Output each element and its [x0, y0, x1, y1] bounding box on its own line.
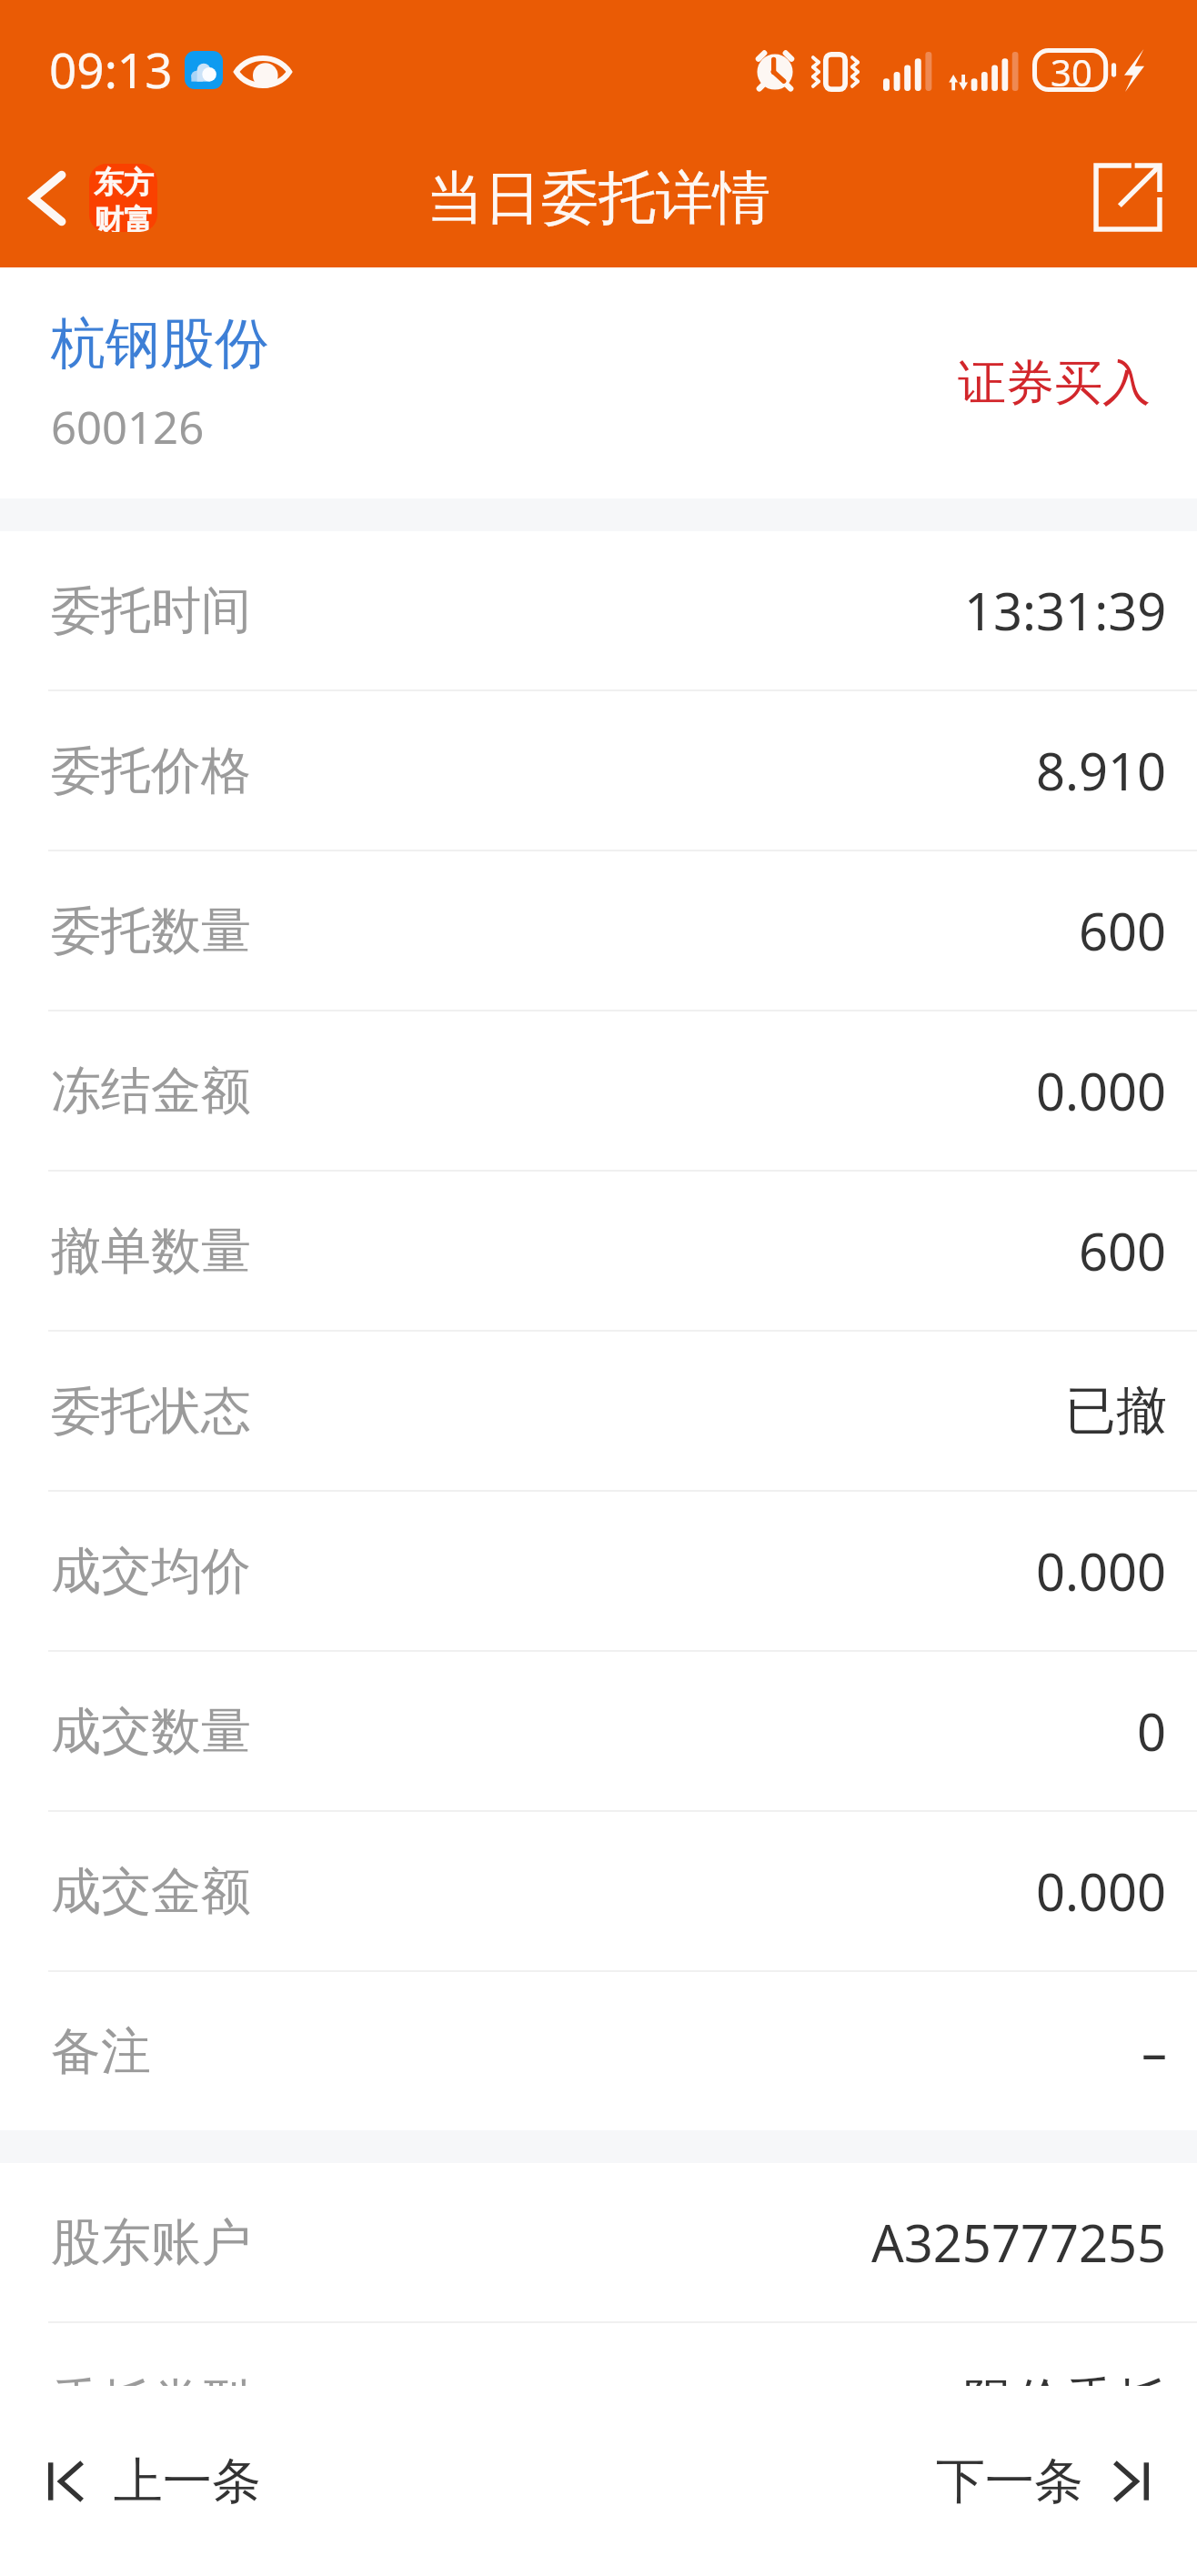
staticText: A325777255	[871, 2208, 1167, 2277]
staticText: 当日委托详情	[427, 162, 770, 234]
staticText: 限价委托	[963, 2370, 1167, 2435]
staticText: 600126	[51, 397, 205, 458]
staticText: 财富	[94, 202, 154, 232]
staticText: 0.000	[1036, 1536, 1167, 1605]
button[interactable]: 委托数量	[0, 851, 1197, 1010]
button[interactable]: 委托类型	[0, 2323, 1197, 2481]
staticText: 冻结金额	[51, 1060, 251, 1122]
button[interactable]: 撤单数量	[0, 1172, 1197, 1330]
staticText: 13:31:39	[964, 576, 1167, 645]
button[interactable]: 备注	[0, 1972, 1197, 2130]
staticText: 杭钢股份	[51, 309, 269, 378]
staticText: 撤单数量	[51, 1220, 251, 1283]
staticText: 600	[1079, 1216, 1167, 1285]
staticText: 委托时间	[51, 579, 251, 642]
button[interactable]: Share	[1053, 136, 1197, 259]
staticText: 股东账户	[51, 2211, 251, 2274]
staticText: 600	[1079, 896, 1167, 965]
staticText: 0.000	[1036, 1056, 1167, 1125]
staticText: 0	[1137, 1696, 1167, 1766]
staticText: 成交金额	[51, 1860, 251, 1923]
staticText: 下一条	[936, 2450, 1083, 2512]
button[interactable]: 委托状态	[0, 1332, 1197, 1490]
button[interactable]: 成交均价	[0, 1492, 1197, 1650]
staticText: –	[1142, 2017, 1167, 2086]
staticText: 0.000	[1036, 1857, 1167, 1926]
staticText: 30	[1051, 47, 1092, 91]
staticText: 委托状态	[51, 1380, 251, 1443]
button[interactable]: 上一条	[0, 2427, 297, 2536]
button[interactable]: Back	[0, 146, 181, 250]
button[interactable]: 下一条	[900, 2427, 1197, 2536]
staticText: 委托类型	[51, 2371, 251, 2434]
button[interactable]: 冻结金额	[0, 1011, 1197, 1170]
staticText: 委托数量	[51, 900, 251, 962]
staticText: 8.910	[1036, 736, 1167, 805]
staticText: 委托价格	[51, 740, 251, 802]
button[interactable]: 成交金额	[0, 1812, 1197, 1970]
staticText: 成交数量	[51, 1700, 251, 1763]
staticText: 证券买入	[958, 353, 1151, 414]
button[interactable]: 委托价格	[0, 691, 1197, 850]
staticText: 东方	[94, 164, 154, 202]
staticText: 09:13	[49, 36, 173, 102]
button[interactable]: 股东账户	[0, 2163, 1197, 2321]
staticText: 成交均价	[51, 1540, 251, 1603]
staticText: 上一条	[114, 2450, 261, 2512]
button[interactable]: 成交数量	[0, 1652, 1197, 1810]
button[interactable]: 委托时间	[0, 531, 1197, 689]
staticText: 已撤	[1065, 1379, 1167, 1444]
staticText: 备注	[51, 2020, 151, 2083]
